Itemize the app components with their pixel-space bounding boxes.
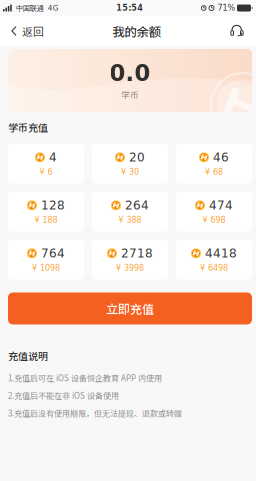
- staticText: 2.充值后不能在非 iOS 设备使用: [8, 389, 119, 401]
- staticText: 4418: [205, 246, 237, 260]
- staticText: 474: [209, 198, 233, 212]
- staticText: 充值说明: [8, 348, 48, 363]
- staticText: ¥ 188: [34, 215, 57, 225]
- staticText: ¥ 68: [205, 167, 223, 177]
- staticText: 71%: [214, 3, 235, 13]
- button[interactable]: 返回: [4, 16, 51, 46]
- staticText: 15:54: [116, 3, 143, 13]
- button[interactable]: 20: [92, 143, 168, 183]
- staticText: ¥ 6: [39, 167, 52, 177]
- button[interactable]: 2718: [92, 239, 168, 279]
- button[interactable]: 128: [8, 191, 84, 231]
- staticText: 返回: [22, 23, 44, 39]
- staticText: 764: [41, 246, 65, 260]
- staticText: 4G: [44, 4, 59, 12]
- staticText: 0.0: [109, 60, 150, 86]
- staticText: 学币: [121, 88, 139, 101]
- button[interactable]: 46: [176, 143, 252, 183]
- staticText: 中国联通: [12, 3, 44, 13]
- staticText: 46: [213, 150, 229, 164]
- staticText: 128: [41, 198, 65, 212]
- button[interactable]: 4: [8, 143, 84, 183]
- button[interactable]: 264: [92, 191, 168, 231]
- staticText: ¥ 388: [118, 215, 141, 225]
- staticText: 4: [49, 150, 57, 164]
- button[interactable]: 立即充值: [8, 292, 252, 324]
- staticText: 3.充值后没有使用期限，但无法提现、退款或转赠: [8, 407, 182, 419]
- button[interactable]: Customer service: [222, 16, 252, 46]
- staticText: ¥ 30: [121, 167, 139, 177]
- button[interactable]: 4418: [176, 239, 252, 279]
- staticText: 20: [129, 150, 145, 164]
- staticText: 264: [125, 198, 149, 212]
- staticText: ¥ 1098: [32, 263, 60, 273]
- staticText: 立即充值: [106, 300, 154, 317]
- staticText: 学币充值: [8, 120, 48, 134]
- staticText: ¥ 6498: [200, 263, 228, 273]
- button[interactable]: 474: [176, 191, 252, 231]
- staticText: 1.充值后可在 iOS 设备恒企教育 APP 内使用: [8, 372, 162, 384]
- staticText: 2718: [121, 246, 153, 260]
- staticText: ¥ 3998: [116, 263, 144, 273]
- staticText: 我的余额: [112, 22, 160, 40]
- staticText: ¥ 698: [202, 215, 225, 225]
- button[interactable]: 764: [8, 239, 84, 279]
